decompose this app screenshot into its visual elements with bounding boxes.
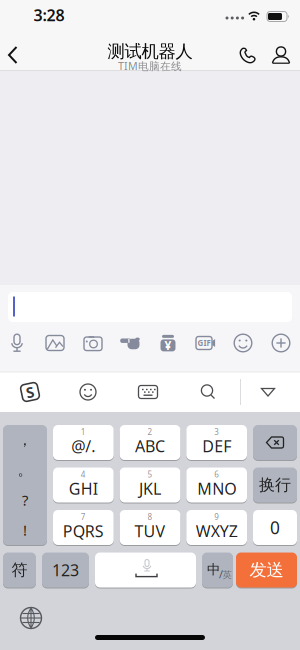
staticText: GHI xyxy=(69,478,98,499)
staticText: 123 xyxy=(52,559,79,581)
staticText: 英 xyxy=(222,569,231,581)
staticText: GIF xyxy=(197,338,210,348)
staticText: 发送 xyxy=(249,559,283,581)
staticText: 符 xyxy=(11,560,27,580)
staticText: 3:28 xyxy=(33,4,64,26)
staticText: 换行 xyxy=(259,475,291,495)
staticText: 7 xyxy=(81,512,86,522)
staticText: ? xyxy=(22,490,28,510)
staticText: / xyxy=(219,567,223,581)
staticText: ， xyxy=(17,431,32,449)
staticText: 9 xyxy=(214,512,219,522)
staticText: MNO xyxy=(197,478,236,499)
staticText: 4 xyxy=(81,469,86,480)
staticText: WXYZ xyxy=(196,520,238,542)
staticText: 6 xyxy=(214,469,219,480)
staticText: 8 xyxy=(148,512,153,522)
staticText: 测试机器人 xyxy=(107,41,192,62)
staticText: JKL xyxy=(139,478,161,499)
staticText: 。 xyxy=(17,461,32,479)
staticText: ¥ xyxy=(164,337,171,353)
staticText: S xyxy=(26,382,34,402)
staticText: 中 xyxy=(207,561,220,578)
staticText: 5 xyxy=(148,469,153,480)
staticText: @/. xyxy=(71,435,95,457)
staticText: ! xyxy=(23,520,27,540)
staticText: TUV xyxy=(135,520,166,542)
staticText: 1 xyxy=(81,427,86,437)
staticText: 2 xyxy=(148,427,153,437)
staticText: ABC xyxy=(135,435,165,457)
staticText: TIM电脑在线 xyxy=(118,59,182,73)
staticText: 3 xyxy=(214,427,219,437)
staticText: PQRS xyxy=(63,520,104,542)
staticText: DEF xyxy=(202,435,231,457)
staticText: 0 xyxy=(270,516,280,539)
